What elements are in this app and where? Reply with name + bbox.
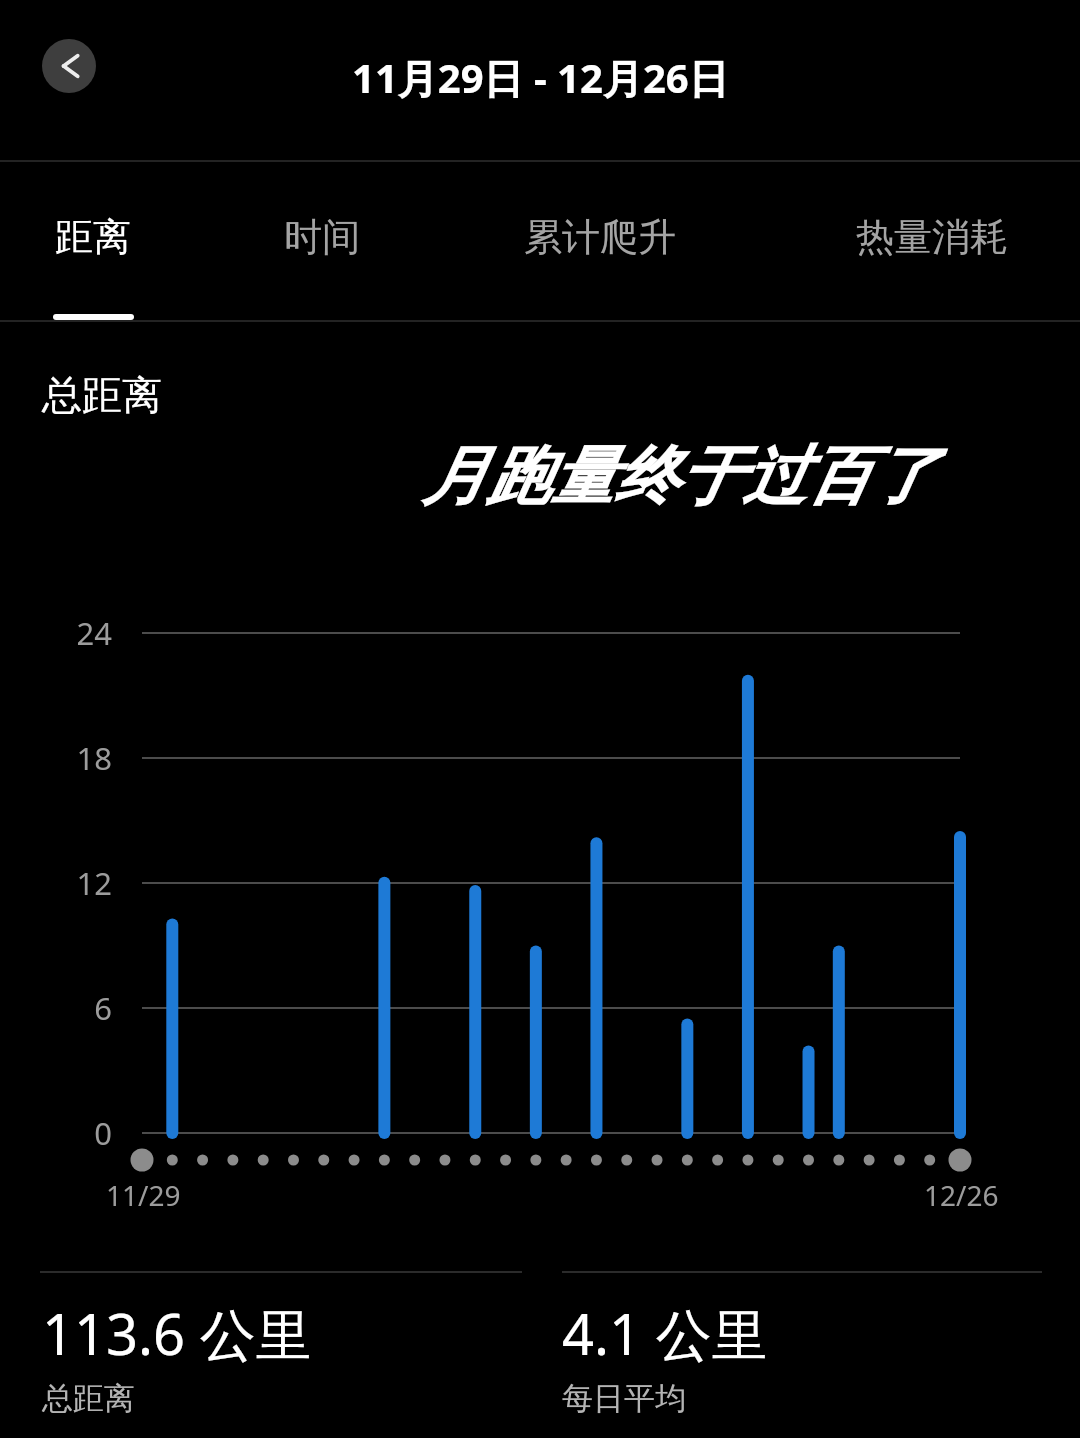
- button[interactable]: 热量消耗: [792, 163, 1072, 321]
- staticText: 月跑量终于过百了: [422, 436, 934, 517]
- staticText: 11月29日 - 12月26日: [352, 50, 729, 105]
- button[interactable]: 时间: [222, 163, 422, 321]
- button[interactable]: 4.1 公里: [562, 1295, 1042, 1418]
- button[interactable]: 累计爬升: [470, 163, 730, 321]
- staticText: 18: [10, 737, 112, 779]
- staticText: 时间: [284, 213, 360, 261]
- button[interactable]: Back: [42, 39, 96, 93]
- button[interactable]: 距离: [0, 163, 193, 321]
- button[interactable]: 113.6 公里: [42, 1295, 522, 1418]
- staticText: 总距离: [42, 370, 162, 420]
- staticText: 累计爬升: [524, 213, 676, 261]
- staticText: 113.6 公里: [42, 1295, 312, 1371]
- staticText: 12: [10, 862, 112, 904]
- staticText: 6: [10, 987, 112, 1029]
- staticText: 4.1 公里: [562, 1295, 768, 1371]
- staticText: 0: [10, 1112, 112, 1154]
- staticText: 11/29: [106, 1176, 181, 1214]
- staticText: 12/26: [924, 1176, 999, 1214]
- staticText: 总距离: [42, 1379, 135, 1418]
- staticText: 热量消耗: [856, 213, 1008, 261]
- staticText: 距离: [55, 213, 131, 261]
- staticText: 24: [10, 612, 112, 654]
- staticText: 每日平均: [562, 1379, 686, 1418]
